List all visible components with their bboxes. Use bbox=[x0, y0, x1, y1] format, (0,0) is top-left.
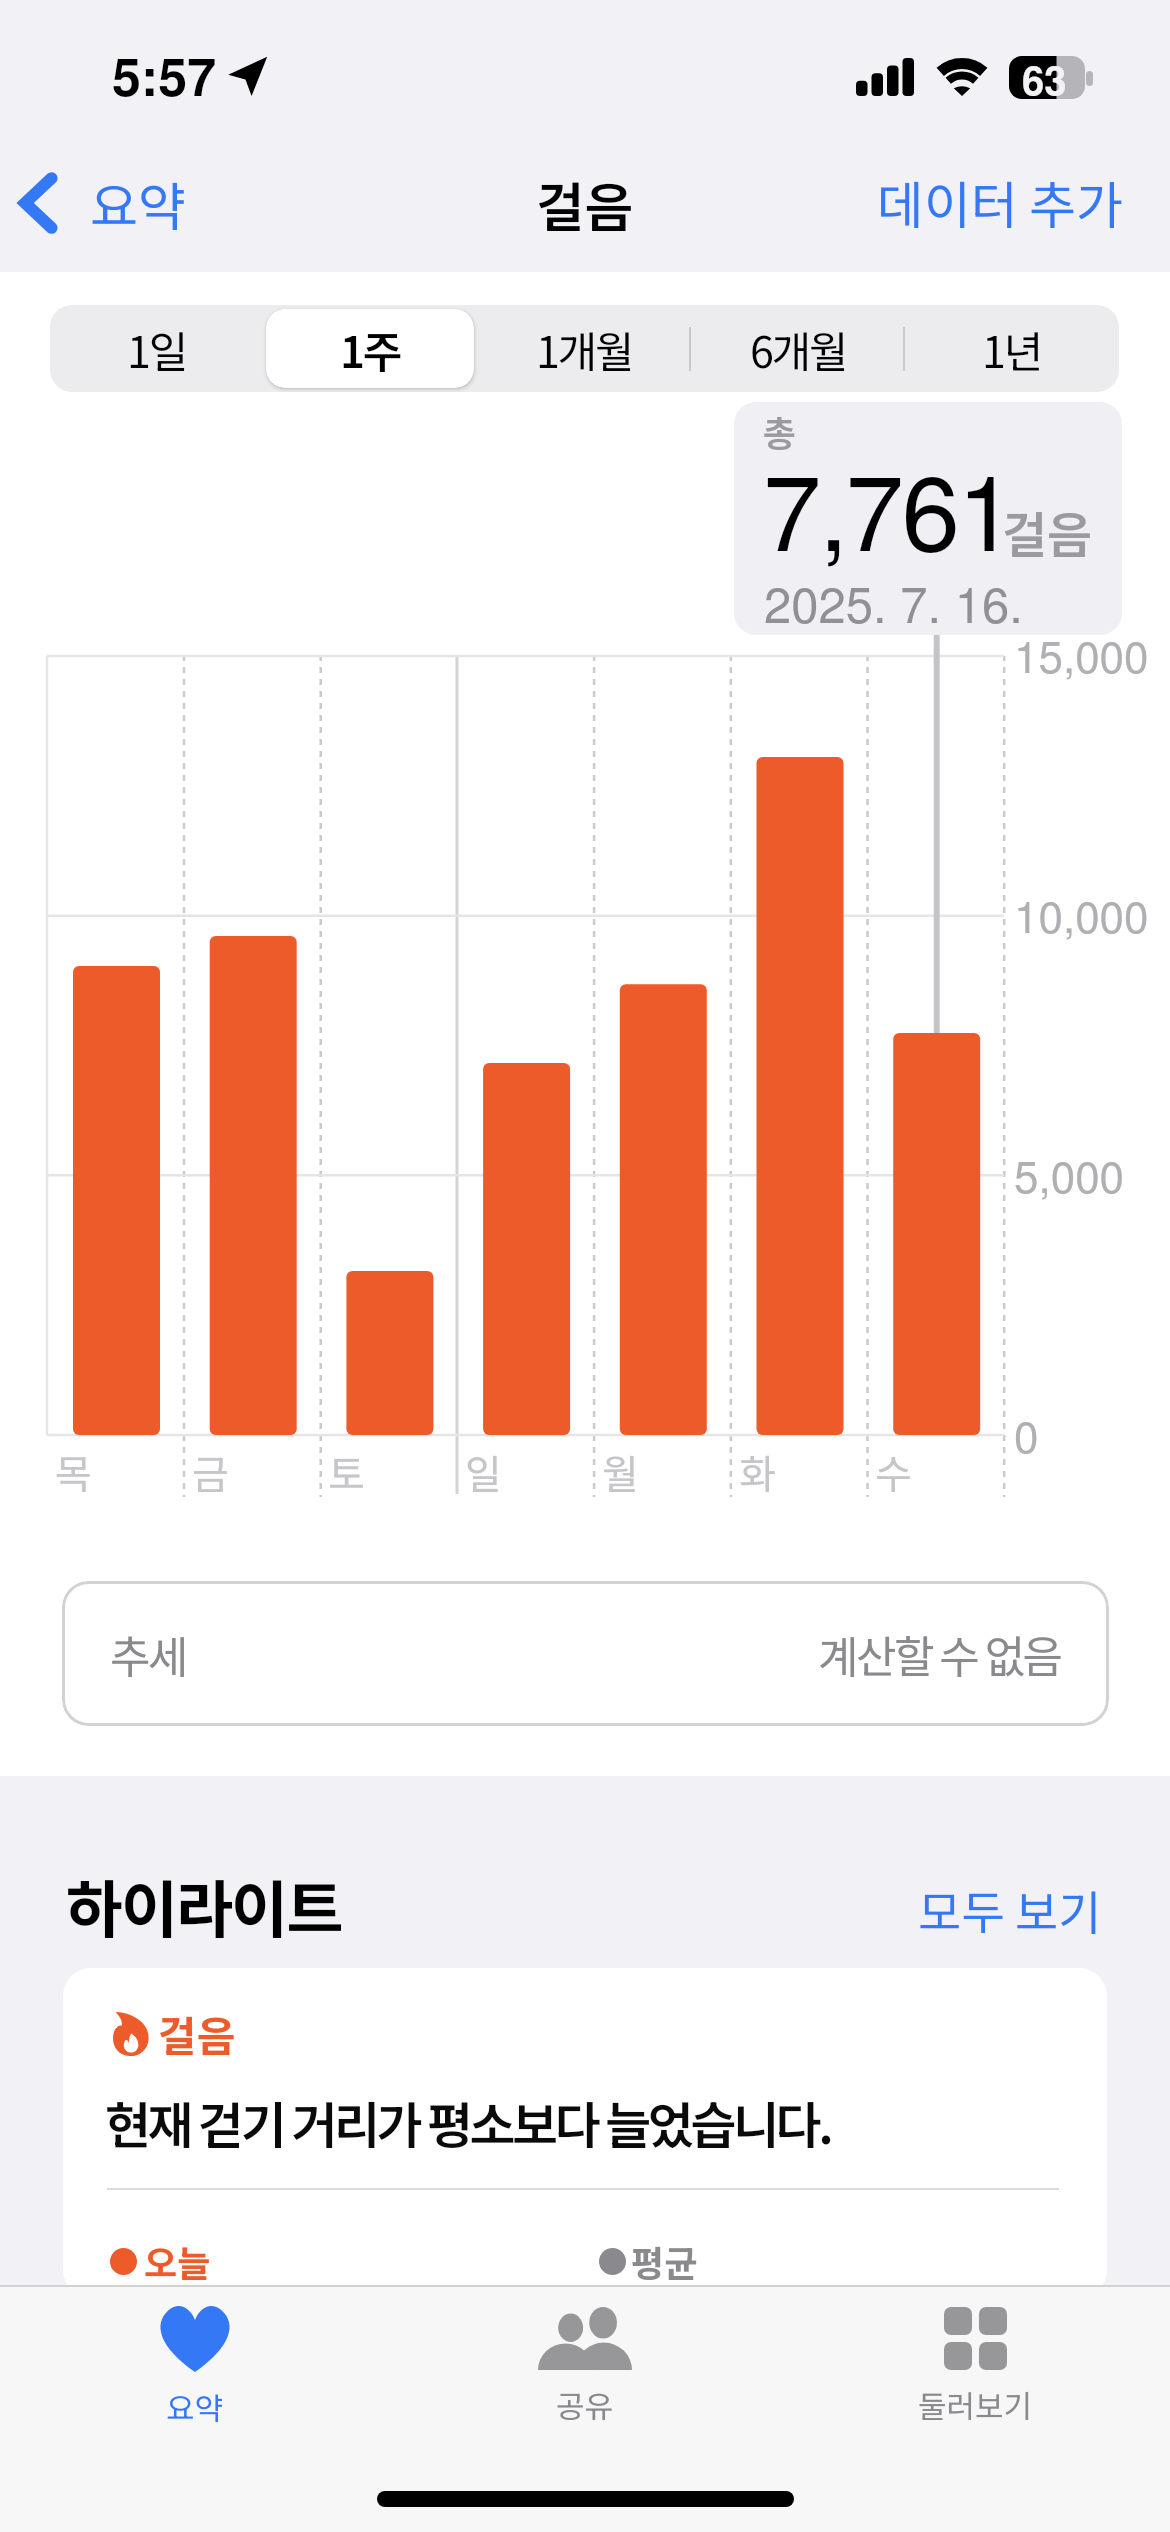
staticText: 일 bbox=[465, 1443, 502, 1501]
staticText: 하이라이트 bbox=[66, 1860, 342, 1950]
staticText: 15,000 bbox=[1014, 622, 1149, 685]
staticText: 계산할 수 없음 bbox=[818, 1622, 1061, 1686]
staticText: 1개월 bbox=[536, 318, 633, 380]
button[interactable]: 6개월 bbox=[691, 305, 905, 392]
staticText: 둘러보기 bbox=[918, 2382, 1033, 2427]
staticText: 월 bbox=[602, 1443, 639, 1501]
staticText: 공유 bbox=[556, 2382, 614, 2427]
staticText: 1년 bbox=[982, 318, 1042, 380]
button[interactable]: 1개월 bbox=[477, 305, 691, 392]
staticText: 총 bbox=[763, 405, 797, 457]
staticText: 7,761 bbox=[763, 430, 1014, 580]
staticText: 목 bbox=[55, 1443, 92, 1501]
staticText: 화 bbox=[739, 1443, 776, 1501]
staticText: 토 bbox=[328, 1443, 365, 1501]
staticText: 요약 bbox=[166, 2384, 224, 2429]
staticText: 요약 bbox=[90, 166, 186, 241]
button[interactable]: 1년 bbox=[905, 305, 1119, 392]
button[interactable]: 추세 bbox=[62, 1581, 1109, 1726]
staticText: 10,000 bbox=[1014, 882, 1149, 945]
staticText: 평균 bbox=[631, 2235, 698, 2287]
button[interactable]: 1주 bbox=[263, 305, 477, 392]
staticText: 걸음 bbox=[158, 2003, 236, 2064]
staticText: 5,000 bbox=[1014, 1142, 1125, 1205]
button[interactable]: 데이터 추가 bbox=[877, 165, 1124, 239]
staticText: 0 bbox=[1014, 1402, 1039, 1465]
staticText: 6개월 bbox=[750, 318, 847, 380]
staticText: 걸음 bbox=[536, 166, 634, 243]
button[interactable]: 모두 보기 bbox=[918, 1875, 1102, 1943]
staticText: 추세 bbox=[110, 1622, 186, 1686]
button[interactable]: Summary bbox=[0, 2285, 390, 2465]
staticText: 1주 bbox=[340, 318, 401, 380]
button[interactable]: Browse bbox=[780, 2285, 1170, 2465]
staticText: 금 bbox=[192, 1443, 229, 1501]
staticText: 2025. 7. 16. bbox=[764, 567, 1023, 635]
staticText: 63 bbox=[1022, 50, 1067, 107]
staticText: 5:57 bbox=[112, 37, 217, 111]
staticText: 1일 bbox=[127, 318, 187, 380]
button[interactable]: 1일 bbox=[50, 305, 263, 392]
staticText: 수 bbox=[875, 1443, 912, 1501]
staticText: 오늘 bbox=[144, 2235, 211, 2287]
button[interactable]: Sharing bbox=[390, 2285, 780, 2465]
staticText: 걸음 bbox=[1002, 496, 1093, 567]
button[interactable]: 요약 bbox=[17, 157, 186, 249]
button[interactable]: 걸음 bbox=[63, 1968, 1107, 2298]
staticText: 현재 걷기 거리가 평소보다 늘었습니다. bbox=[105, 2086, 831, 2158]
